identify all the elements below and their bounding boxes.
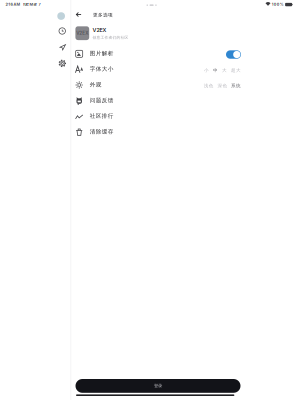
staticText: V2EX [76,30,88,36]
button[interactable]: 图片解析 [70,47,242,62]
staticText: 社区排行 [90,112,114,119]
staticText: 创意工作者们的社区 [92,35,128,40]
button[interactable]: Account [57,12,65,20]
button[interactable]: 浅色 [204,83,214,89]
staticText: 大 [222,67,227,73]
staticText: 100% [272,2,284,7]
button[interactable]: Messages [60,44,66,50]
button[interactable]: 外观 [70,78,242,94]
button[interactable]: Back [76,12,81,17]
button[interactable]: 深色 [217,83,227,89]
staticText: 字体大小 [90,65,114,73]
staticText: 更多选项 [93,12,113,18]
staticText: 外观 [90,81,102,88]
button[interactable]: 清除缓存 [70,125,242,141]
staticText: 超大 [231,67,241,73]
staticText: 浅色 [204,83,214,89]
staticText: 深色 [217,83,227,89]
button[interactable]: 大 [222,67,227,73]
button[interactable]: V2EX [75,26,128,40]
staticText: V2EX [92,27,106,33]
button[interactable]: 系统 [231,83,241,89]
button[interactable]: 小 [204,67,209,73]
staticText: 图片解析 [90,50,114,57]
button[interactable]: 超大 [231,67,241,73]
staticText: 系统 [231,83,241,89]
staticText: Tue Mar 7 [23,2,41,7]
button[interactable]: 问题反馈 [70,94,242,109]
staticText: 小 [204,67,209,73]
button[interactable]: 字体大小 [70,62,242,78]
staticText: 清除缓存 [90,128,114,135]
staticText: 问题反馈 [90,97,114,104]
button[interactable]: 中 [213,67,218,73]
button[interactable]: 更多选项 [93,12,113,18]
staticText: 中 [213,67,218,73]
button[interactable]: Recent [59,28,65,34]
staticText: 2:16 AM [5,2,20,7]
button[interactable]: Settings [59,60,66,67]
button[interactable]: 社区排行 [70,109,242,125]
button[interactable]: 登录 [75,379,240,393]
staticText: 登录 [154,383,162,389]
